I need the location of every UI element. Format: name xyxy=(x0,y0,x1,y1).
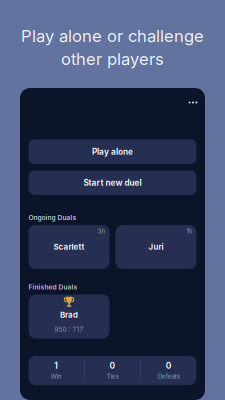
staticText: Finished Duals xyxy=(29,283,78,291)
button[interactable]: 3h xyxy=(29,225,109,269)
button[interactable]: More options xyxy=(184,95,202,109)
staticText: Win xyxy=(51,373,62,380)
staticText: Scarlett xyxy=(54,242,85,252)
staticText: 1h xyxy=(186,227,192,235)
staticText: 950 : 717 xyxy=(55,326,84,333)
button[interactable]: 1h xyxy=(115,225,196,269)
staticText: 3h xyxy=(97,227,105,235)
staticText: Juri xyxy=(148,242,163,252)
staticText: other players xyxy=(61,49,164,69)
staticText: Ongoing Duals xyxy=(29,213,77,222)
staticText: Start new duel xyxy=(83,178,141,188)
staticText: Brad xyxy=(60,310,78,320)
staticText: 1 xyxy=(54,361,58,371)
button[interactable]: Start new duel xyxy=(29,170,196,195)
staticText: Ties xyxy=(106,373,118,380)
button[interactable]: Brad xyxy=(29,294,109,338)
staticText: 0 xyxy=(109,361,115,371)
staticText: Play alone or challenge xyxy=(21,26,204,46)
button[interactable]: Play alone xyxy=(29,139,196,164)
staticText: 0 xyxy=(166,361,172,371)
staticText: Play alone xyxy=(92,147,133,157)
staticText: Defeats xyxy=(158,373,180,380)
